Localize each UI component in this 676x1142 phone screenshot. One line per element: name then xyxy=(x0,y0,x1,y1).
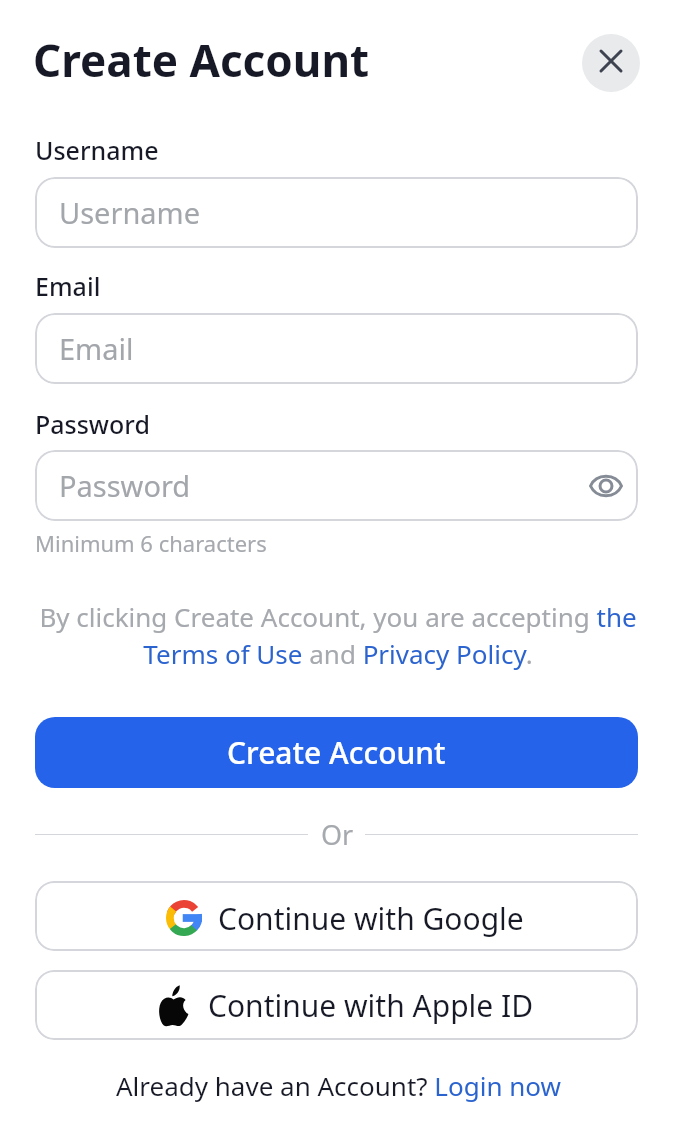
button[interactable]: Continue with Apple ID xyxy=(35,970,638,1040)
staticText: Username xyxy=(59,193,201,232)
button[interactable]: Password xyxy=(35,450,638,521)
staticText: Create Account xyxy=(227,732,446,773)
button[interactable]: Username xyxy=(35,177,638,248)
staticText: Password xyxy=(59,466,191,505)
staticText: Username xyxy=(35,133,159,167)
button[interactable]: Show password xyxy=(587,467,625,505)
staticText: Create Account xyxy=(33,30,370,90)
button[interactable]: Continue with Google xyxy=(35,881,638,951)
staticText: Continue with Google xyxy=(218,898,524,939)
button[interactable]: Create Account xyxy=(35,717,638,788)
staticText: By clicking Create Account, you are acce… xyxy=(35,599,641,672)
button[interactable]: Already have an Account? Login now xyxy=(116,1068,561,1103)
staticText: Password xyxy=(35,407,150,441)
staticText: Or xyxy=(321,816,354,847)
button[interactable]: Close xyxy=(582,34,640,92)
button[interactable]: Email xyxy=(35,313,638,384)
staticText: Continue with Apple ID xyxy=(208,985,534,1026)
staticText: Email xyxy=(35,269,101,303)
staticText: Email xyxy=(59,329,134,368)
staticText: Already have an Account? Login now xyxy=(116,1068,561,1103)
staticText: Minimum 6 characters xyxy=(35,528,267,558)
